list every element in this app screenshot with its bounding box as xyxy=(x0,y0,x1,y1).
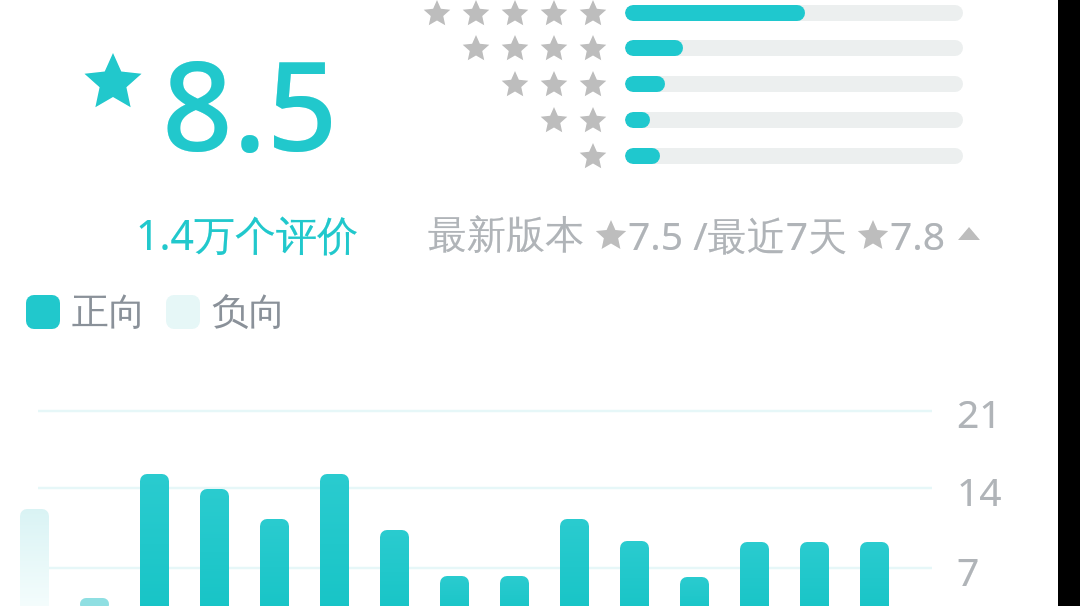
button[interactable] xyxy=(625,5,963,21)
staticText: 最新版本 xyxy=(428,210,584,259)
other: 4 star xyxy=(400,30,610,66)
button[interactable] xyxy=(625,112,963,128)
other: 3 star xyxy=(400,66,610,102)
staticText: 负向 xyxy=(212,288,286,335)
button[interactable]: 正向 xyxy=(26,288,286,335)
button[interactable] xyxy=(625,148,963,164)
staticText: 正向 xyxy=(72,288,146,335)
button[interactable] xyxy=(625,40,963,56)
other: 2 star xyxy=(400,102,610,138)
other: 5 star xyxy=(400,0,610,31)
button[interactable]: 1.4万个评价 xyxy=(136,206,358,262)
button[interactable]: 最新版本 xyxy=(428,208,980,261)
button[interactable] xyxy=(625,76,963,92)
other: Rating star xyxy=(84,52,142,112)
staticText: 7.8 xyxy=(890,208,946,261)
staticText: 14 xyxy=(957,464,1002,517)
other: 1 star xyxy=(400,138,610,174)
staticText: 8.5 xyxy=(162,18,338,187)
staticText: 7 xyxy=(957,544,980,597)
staticText: 21 xyxy=(957,386,1002,439)
staticText: 7.5 /最近7天 xyxy=(628,208,848,261)
